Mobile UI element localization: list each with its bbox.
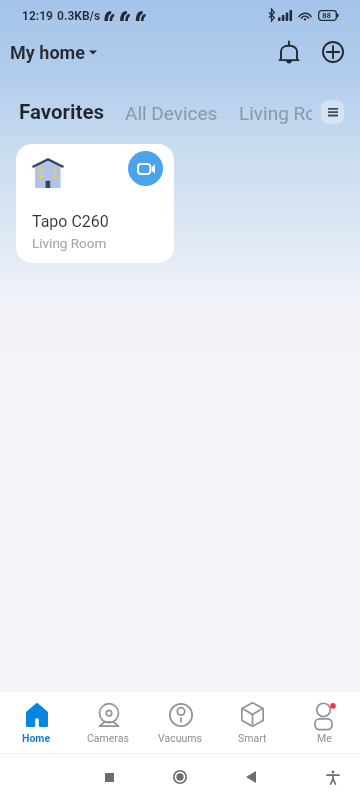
staticText: All Devices — [125, 102, 218, 124]
button[interactable]: Manage tabs — [321, 100, 344, 124]
button[interactable]: Camera live view — [16, 144, 174, 263]
staticText: Smart — [238, 732, 267, 744]
button[interactable]: Vacuums — [144, 692, 216, 753]
button[interactable]: Accessibility — [320, 764, 346, 790]
button[interactable]: Home — [0, 692, 72, 753]
staticText: Vacuums — [158, 732, 202, 744]
staticText: Living Room — [239, 102, 312, 124]
staticText: 0.3KB/s — [57, 9, 101, 23]
staticText: 88 — [322, 11, 332, 20]
button[interactable]: Living Room — [239, 102, 312, 124]
staticText: Tapo C260 — [32, 212, 109, 231]
staticText: Me — [317, 732, 332, 744]
button[interactable]: Notifications — [267, 30, 311, 74]
staticText: Home — [22, 732, 51, 744]
button[interactable]: Me — [288, 692, 360, 753]
staticText: 12:19 — [22, 9, 53, 23]
button[interactable]: Smart — [216, 692, 288, 753]
button[interactable]: All Devices — [125, 102, 218, 124]
staticText: Living Room — [32, 235, 107, 251]
button[interactable]: Back — [238, 764, 264, 790]
button[interactable]: Add device — [311, 30, 355, 74]
button[interactable]: Camera live view — [128, 151, 163, 186]
button[interactable]: Cameras — [72, 692, 144, 753]
button[interactable]: Favorites — [19, 100, 105, 124]
staticText: My home — [10, 42, 85, 63]
staticText: Favorites — [19, 100, 105, 124]
button[interactable]: Recents — [96, 764, 122, 790]
button[interactable]: My home — [8, 38, 99, 67]
button[interactable]: Home — [167, 764, 193, 790]
staticText: Cameras — [87, 732, 129, 744]
